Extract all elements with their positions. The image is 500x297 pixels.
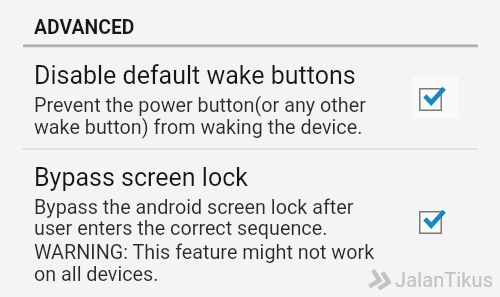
- button[interactable]: Toggle setting: [412, 76, 459, 118]
- staticText: Prevent the power button(or any other: [34, 94, 366, 117]
- staticText: wake button) from waking the device.: [34, 116, 363, 139]
- button[interactable]: Disable default wake buttons: [0, 46, 500, 146]
- staticText: JalanTikus: [395, 268, 494, 291]
- button[interactable]: Toggle setting: [412, 199, 459, 241]
- staticText: Bypass screen lock: [34, 163, 248, 192]
- staticText: on all devices.: [34, 263, 159, 286]
- button[interactable]: Bypass screen lock: [0, 151, 500, 293]
- staticText: user enters the correct sequence.: [34, 217, 328, 240]
- staticText: ADVANCED: [34, 16, 135, 39]
- staticText: Bypass the android screen lock after: [34, 196, 354, 219]
- staticText: Disable default wake buttons: [34, 61, 356, 90]
- staticText: WARNING: This feature might not work: [34, 241, 375, 264]
